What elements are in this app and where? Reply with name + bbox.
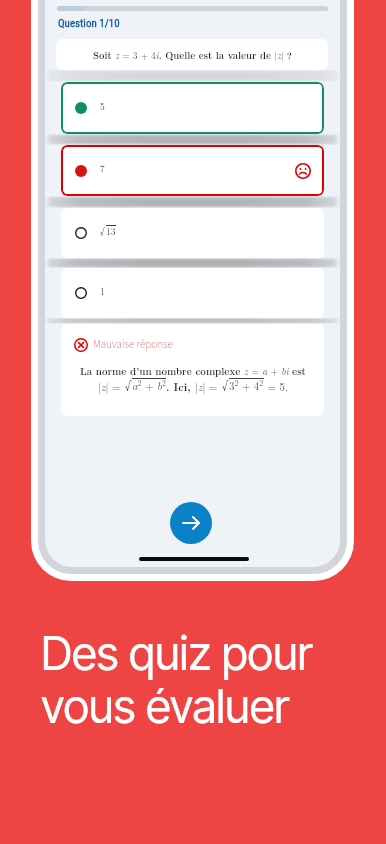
staticText: |z| =	[195, 379, 222, 394]
staticText: 32 + 42	[229, 377, 264, 393]
button[interactable]: 1	[61, 268, 324, 318]
staticText: √	[100, 223, 106, 238]
staticText: = 5.	[264, 379, 288, 394]
staticText: √	[125, 375, 132, 394]
staticText: √	[222, 375, 229, 394]
staticText: |z| =	[98, 379, 125, 394]
staticText: 13	[106, 224, 116, 237]
staticText: 7	[100, 161, 105, 174]
staticText: . Ici,	[166, 379, 195, 394]
button[interactable]: 5	[61, 82, 324, 134]
staticText: 1	[100, 284, 105, 297]
staticText: a2 + b2	[132, 377, 166, 393]
staticText: Mauvaise réponse	[93, 337, 173, 353]
staticText: La norme d’un nombre complexe z = a + bi…	[80, 364, 306, 378]
staticText: Soit z = 3 + 4i. Quelle est la valeur de…	[93, 48, 292, 61]
button[interactable]: 7	[61, 145, 324, 196]
staticText: Question 1/10	[58, 17, 120, 30]
staticText: 5	[100, 99, 105, 112]
button[interactable]: √	[61, 208, 324, 258]
button[interactable]: Question suivante	[170, 502, 212, 544]
staticText: Des quiz pour vous évaluer	[41, 625, 313, 734]
